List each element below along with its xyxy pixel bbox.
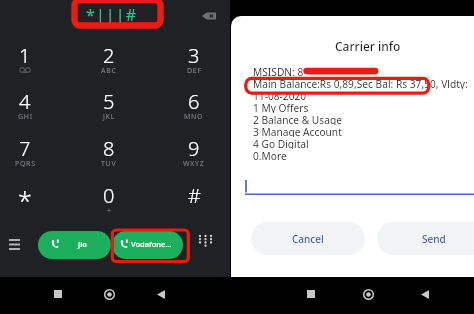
staticText: 2 <box>103 42 115 69</box>
staticText: 6 <box>188 88 200 115</box>
staticText: Main Balance:Rs 0,89,Sec Bal: Rs 37,50, … <box>253 77 468 89</box>
button[interactable]: Menu <box>2 233 27 255</box>
button[interactable]: Recents L <box>47 283 69 305</box>
button[interactable]: Back L <box>150 283 172 305</box>
staticText: WXYZ <box>183 159 205 169</box>
button[interactable]: 9 <box>158 126 230 172</box>
staticText: Send <box>422 232 446 246</box>
staticText: * <box>18 183 32 217</box>
staticText: 2 Balance & Usage <box>253 113 342 125</box>
button[interactable]: 1 <box>0 33 61 79</box>
staticText: Cancel <box>292 232 324 246</box>
button[interactable]: Backspace <box>202 10 216 22</box>
staticText: MSISDN: 8 <box>253 65 304 77</box>
staticText: 8 <box>103 135 115 162</box>
staticText: Vodafone... <box>131 239 172 249</box>
staticText: TUV <box>101 159 117 169</box>
staticText: Carrier info <box>335 38 401 54</box>
button[interactable]: Jio <box>38 231 111 259</box>
button[interactable]: Home R <box>357 283 379 305</box>
staticText: Jio <box>78 239 87 249</box>
staticText: + <box>107 206 112 216</box>
staticText: 3 Manage Account <box>253 125 342 137</box>
button[interactable]: 3 <box>158 33 230 79</box>
button[interactable]: Send <box>377 222 474 255</box>
staticText: GHI <box>18 112 33 122</box>
staticText: 1 <box>19 42 31 69</box>
button[interactable]: 8 <box>73 126 145 172</box>
staticText: DEF <box>187 66 202 76</box>
staticText: 4 Go Digital <box>253 137 309 149</box>
button[interactable]: Keypad <box>195 232 215 252</box>
staticText: # <box>188 182 201 209</box>
button[interactable]: Recents R <box>300 283 322 305</box>
button[interactable]: 6 <box>158 79 230 125</box>
button[interactable]: Reply input <box>245 179 474 195</box>
staticText: *|||# <box>86 4 138 26</box>
staticText: 5 <box>103 88 115 115</box>
button[interactable]: * <box>0 173 61 219</box>
button[interactable]: 0 <box>73 173 145 219</box>
staticText: JKL <box>103 112 116 122</box>
button[interactable]: 5 <box>73 79 145 125</box>
button[interactable]: Back R <box>414 283 436 305</box>
staticText: 3 <box>188 42 200 69</box>
button[interactable]: Home L <box>98 283 120 305</box>
staticText: 0.More <box>253 149 287 161</box>
button[interactable]: Cancel <box>251 222 365 255</box>
button[interactable]: # <box>158 173 230 219</box>
staticText: 0 <box>103 182 115 209</box>
button[interactable]: 2 <box>73 33 145 79</box>
button[interactable]: 7 <box>0 126 61 172</box>
button[interactable]: Vodafone... <box>112 231 183 259</box>
staticText: 11-08-2020 <box>253 89 307 101</box>
button[interactable]: 4 <box>0 79 61 125</box>
staticText: 1 My Offers <box>253 101 309 113</box>
staticText: 4 <box>19 88 31 115</box>
staticText: ABC <box>101 66 117 76</box>
staticText: PQRS <box>15 159 36 169</box>
staticText: 9 <box>188 135 200 162</box>
staticText: 7 <box>19 135 31 162</box>
staticText: MNO <box>184 112 204 122</box>
